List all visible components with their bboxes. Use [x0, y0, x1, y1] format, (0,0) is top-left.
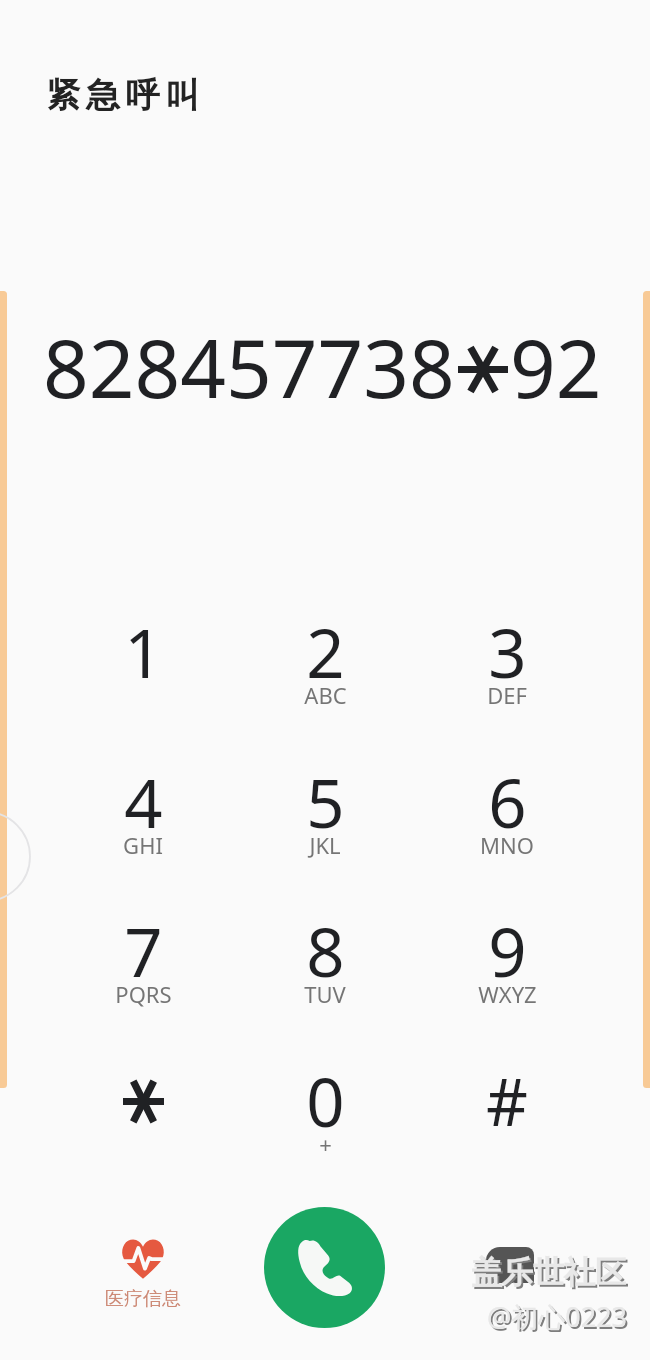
staticText: 0: [306, 1055, 345, 1146]
staticText: 紧急呼叫: [46, 74, 206, 117]
staticText: #: [486, 1057, 528, 1146]
staticText: 盖乐世社区: [471, 1253, 626, 1292]
staticText: 6: [488, 756, 527, 847]
staticText: 9: [488, 905, 527, 996]
button[interactable]: #: [447, 1055, 567, 1183]
staticText: 92: [510, 312, 602, 421]
staticText: 医疗信息: [105, 1287, 181, 1311]
staticText: 7: [124, 905, 163, 996]
button[interactable]: 5: [265, 756, 385, 884]
staticText: PQRS: [115, 979, 172, 1009]
button[interactable]: 医疗信息: [83, 1238, 203, 1318]
staticText: DEF: [487, 680, 527, 710]
staticText: GHI: [123, 830, 163, 860]
staticText: WXYZ: [478, 979, 537, 1009]
staticText: MNO: [480, 830, 534, 860]
staticText: @初心0223: [489, 1300, 630, 1337]
staticText: +: [319, 1129, 332, 1159]
staticText: 4: [124, 756, 163, 847]
button[interactable]: 7: [83, 905, 203, 1033]
button[interactable]: 6: [447, 756, 567, 884]
button[interactable]: 1: [83, 606, 203, 734]
button[interactable]: 2: [265, 606, 385, 734]
staticText: 2: [306, 606, 345, 697]
staticText: JKL: [309, 830, 341, 860]
button[interactable]: 9: [447, 905, 567, 1033]
staticText: TUV: [304, 979, 346, 1009]
button[interactable]: 8: [265, 905, 385, 1033]
staticText: 1: [124, 606, 163, 697]
button[interactable]: 4: [83, 756, 203, 884]
button[interactable]: Call: [264, 1207, 385, 1328]
button[interactable]: Star: [83, 1055, 203, 1183]
button[interactable]: 0: [265, 1055, 385, 1183]
staticText: ABC: [304, 680, 347, 710]
staticText: 828457738: [43, 312, 455, 421]
staticText: 8: [306, 905, 345, 996]
staticText: 盖乐世社区: [473, 1255, 628, 1294]
staticText: 3: [488, 606, 527, 697]
staticText: 5: [306, 756, 345, 847]
button[interactable]: 3: [447, 606, 567, 734]
staticText: @初心0223: [487, 1298, 628, 1335]
